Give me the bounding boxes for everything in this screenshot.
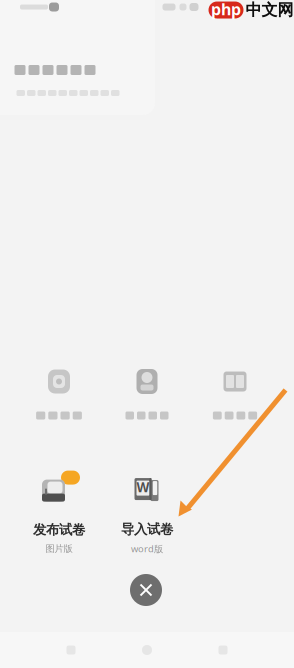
- staticText: word版: [131, 542, 163, 555]
- button[interactable]: 发布试卷: [15, 456, 103, 556]
- button[interactable]: Close: [126, 570, 166, 610]
- button[interactable]: W: [103, 456, 191, 556]
- staticText: 中文网: [245, 0, 293, 20]
- button[interactable]: Option three: [191, 366, 279, 422]
- staticText: 图片版: [45, 543, 72, 554]
- staticText: php: [211, 0, 241, 20]
- button[interactable]: Option one: [15, 366, 103, 422]
- staticText: 导入试卷: [121, 521, 173, 537]
- staticText: 发布试卷: [33, 522, 85, 538]
- staticText: W: [136, 478, 149, 496]
- button[interactable]: Option two: [103, 366, 191, 422]
